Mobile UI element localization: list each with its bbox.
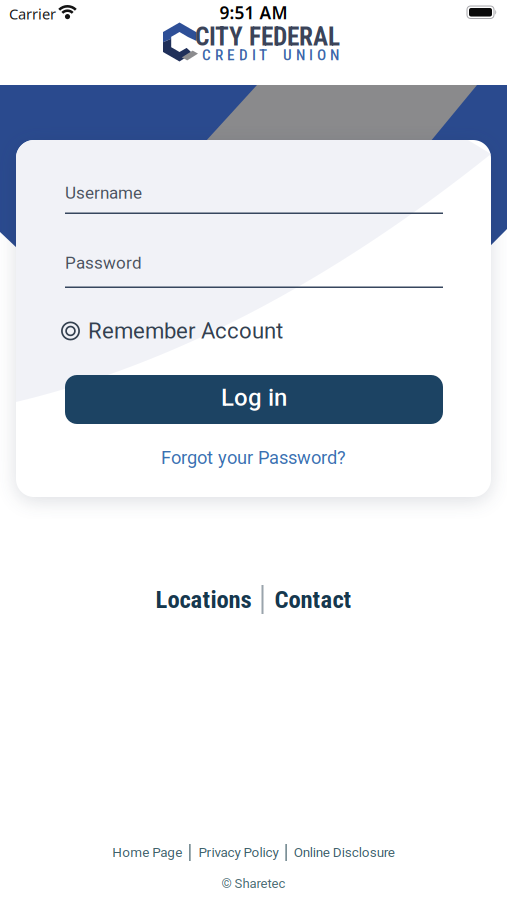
- staticText: Online Disclosure: [294, 845, 395, 860]
- button[interactable]: Password: [65, 253, 443, 288]
- button[interactable]: Locations: [155, 585, 251, 614]
- staticText: C R E D I T U N I O N: [202, 46, 339, 64]
- button[interactable]: Log in: [65, 375, 443, 424]
- staticText: Privacy Policy: [198, 845, 278, 860]
- staticText: Log in: [221, 383, 287, 411]
- staticText: Carrier: [9, 4, 56, 23]
- button[interactable]: Username: [65, 183, 443, 214]
- button[interactable]: Privacy Policy: [198, 845, 278, 860]
- button[interactable]: Contact: [274, 585, 351, 614]
- staticText: Password: [65, 253, 142, 273]
- button[interactable]: Remember Account: [61, 318, 283, 344]
- staticText: Locations: [155, 585, 251, 614]
- staticText: © Sharetec: [221, 876, 285, 891]
- staticText: Remember Account: [88, 318, 283, 344]
- button[interactable]: Forgot your Password?: [16, 447, 491, 468]
- staticText: 9:51 AM: [219, 1, 287, 24]
- button[interactable]: Online Disclosure: [294, 845, 395, 860]
- staticText: Forgot your Password?: [161, 447, 346, 468]
- staticText: Username: [65, 183, 142, 203]
- staticText: Home Page: [112, 845, 182, 860]
- staticText: Contact: [274, 585, 351, 614]
- staticText: CITY FEDERAL: [195, 22, 340, 52]
- button[interactable]: Home Page: [112, 845, 182, 860]
